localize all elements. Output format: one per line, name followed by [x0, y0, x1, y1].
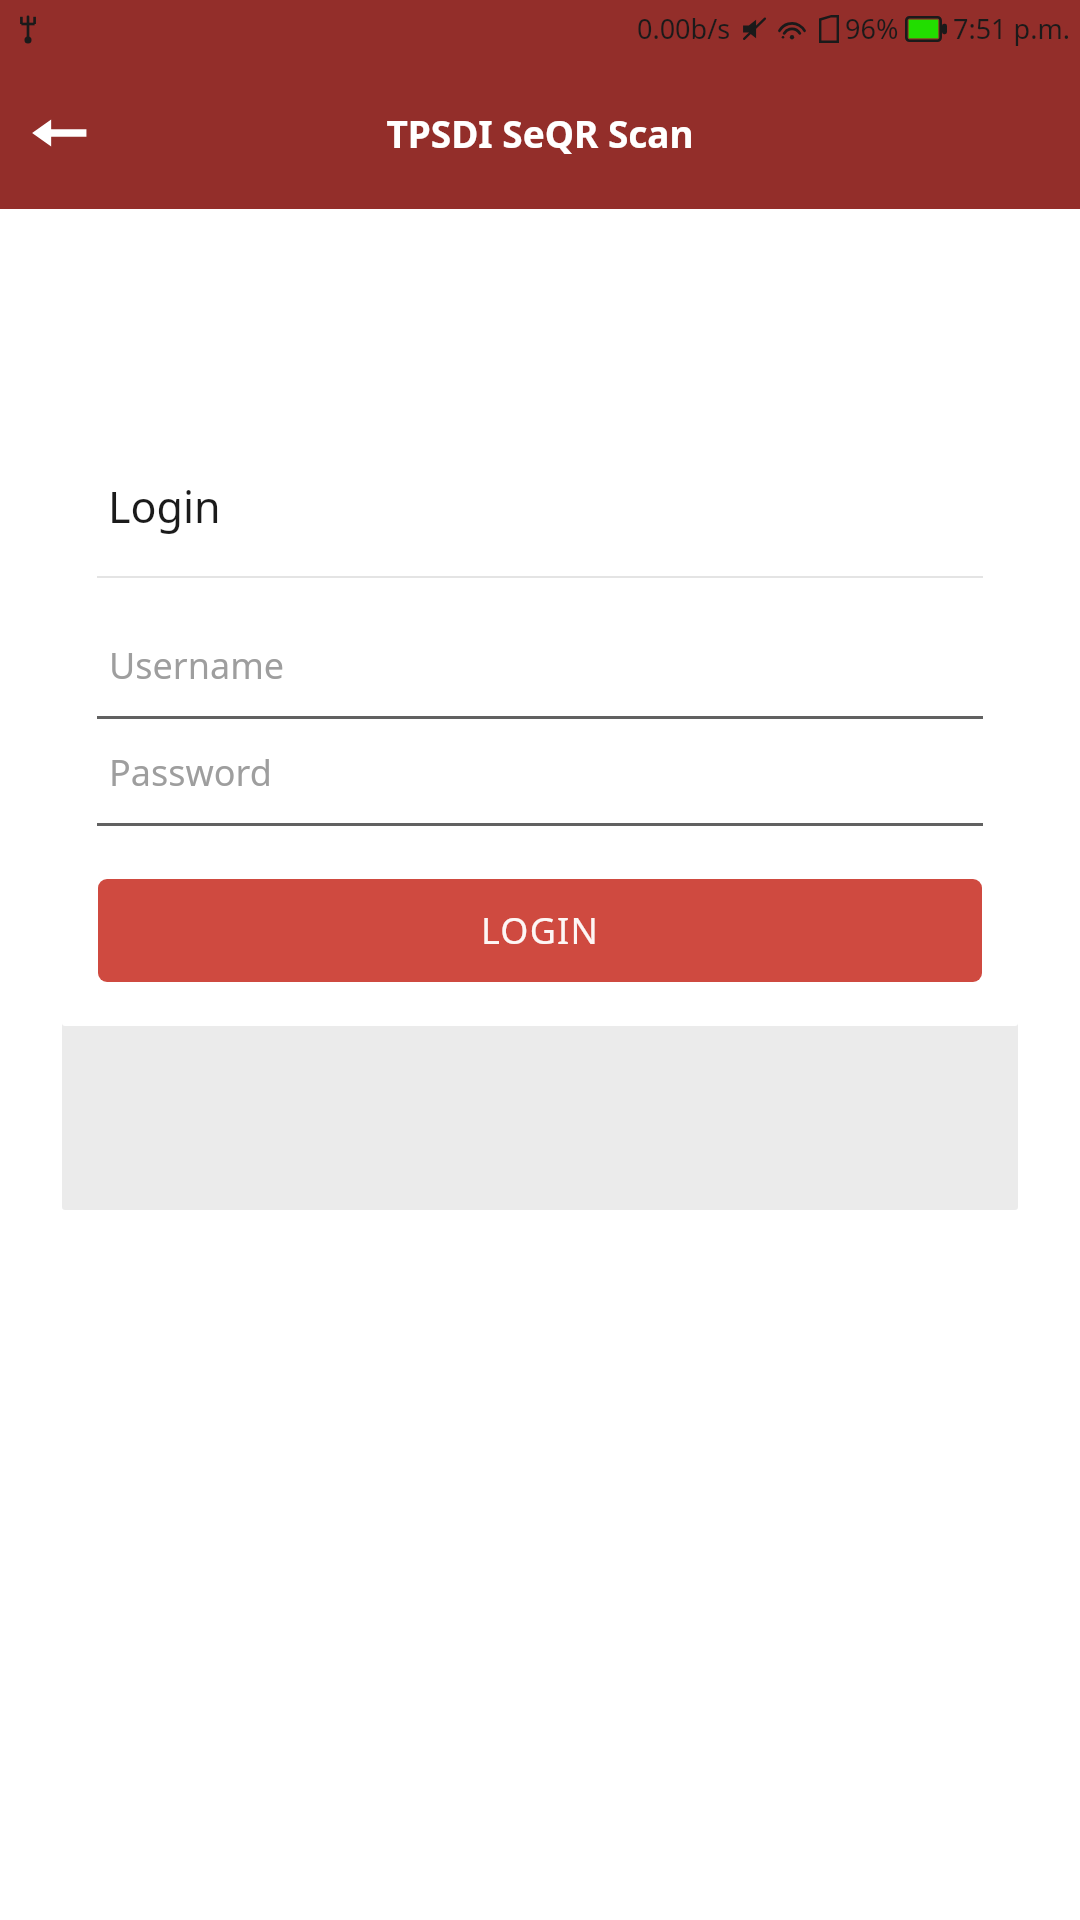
staticText: Username	[109, 641, 285, 690]
staticText: LOGIN	[481, 906, 600, 955]
staticText: Password	[109, 748, 272, 797]
staticText: 7:51 p.m.	[953, 10, 1070, 47]
staticText: Login	[108, 477, 221, 536]
staticText: 0.00b/s	[637, 10, 731, 47]
button[interactable]: Username	[97, 630, 983, 719]
staticText: TPSDI SeQR Scan	[386, 108, 694, 158]
button[interactable]: Password	[97, 737, 983, 826]
button[interactable]: Back	[30, 104, 88, 162]
button[interactable]: LOGIN	[98, 879, 982, 982]
staticText: 96%	[845, 10, 899, 47]
